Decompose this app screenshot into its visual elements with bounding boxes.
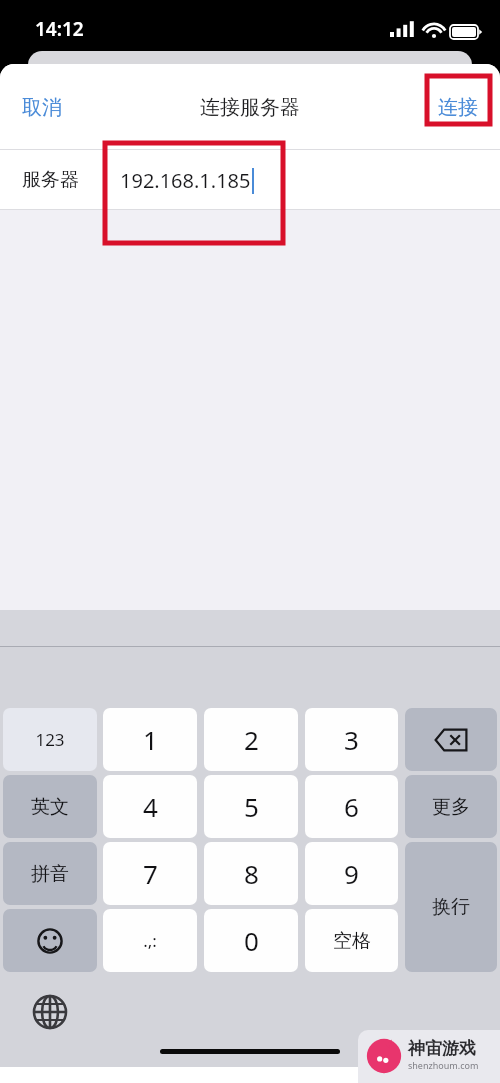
- staticText: 连接服务器: [200, 95, 300, 120]
- staticText: 2: [244, 722, 259, 757]
- staticText: 换行: [432, 895, 470, 919]
- staticText: shenzhoum.com: [408, 1059, 479, 1071]
- staticText: 4: [143, 789, 158, 824]
- button[interactable]: .,:: [103, 909, 197, 972]
- staticText: 神宙游戏: [408, 1038, 476, 1059]
- staticText: .,:: [143, 929, 157, 952]
- staticText: 9: [344, 856, 359, 891]
- button[interactable]: 换行: [405, 842, 497, 972]
- staticText: 更多: [432, 795, 470, 819]
- staticText: 取消: [22, 95, 62, 120]
- button[interactable]: 空格: [305, 909, 398, 972]
- staticText: 5: [244, 789, 259, 824]
- button[interactable]: 3: [305, 708, 398, 771]
- button[interactable]: 4: [103, 775, 197, 838]
- staticText: 0: [244, 923, 259, 958]
- staticText: 服务器: [22, 168, 79, 192]
- button[interactable]: 英文: [3, 775, 97, 838]
- button[interactable]: 9: [305, 842, 398, 905]
- staticText: 1: [143, 722, 158, 757]
- button[interactable]: 服务器: [0, 150, 500, 210]
- staticText: 英文: [31, 795, 69, 819]
- button[interactable]: 6: [305, 775, 398, 838]
- button[interactable]: 0: [204, 909, 298, 972]
- button[interactable]: 123: [3, 708, 97, 771]
- button[interactable]: 表情: [3, 909, 97, 972]
- staticText: 14:12: [35, 16, 84, 42]
- staticText: 123: [35, 728, 65, 751]
- button[interactable]: 更多: [405, 775, 497, 838]
- button[interactable]: 切换键盘: [28, 990, 72, 1034]
- staticText: 3: [344, 722, 359, 757]
- staticText: 192.168.1.185: [120, 167, 251, 194]
- staticText: 连接: [438, 95, 478, 120]
- staticText: 7: [143, 856, 158, 891]
- button[interactable]: 取消: [10, 85, 74, 130]
- button[interactable]: 2: [204, 708, 298, 771]
- button[interactable]: 拼音: [3, 842, 97, 905]
- button[interactable]: 删除: [405, 708, 497, 771]
- button[interactable]: 1: [103, 708, 197, 771]
- button[interactable]: 7: [103, 842, 197, 905]
- staticText: 8: [244, 856, 259, 891]
- staticText: 6: [344, 789, 359, 824]
- button[interactable]: 连接: [426, 85, 490, 130]
- button[interactable]: 5: [204, 775, 298, 838]
- staticText: 拼音: [31, 862, 69, 886]
- button[interactable]: 8: [204, 842, 298, 905]
- staticText: 空格: [333, 929, 371, 953]
